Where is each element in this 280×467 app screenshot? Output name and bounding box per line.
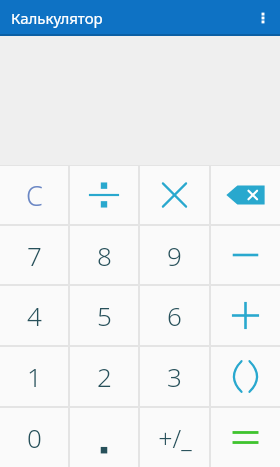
- staticText: C: [26, 177, 43, 214]
- button[interactable]: 9: [140, 226, 209, 284]
- button[interactable]: Multiply: [140, 166, 209, 224]
- staticText: 0: [27, 420, 42, 455]
- staticText: 4: [27, 298, 42, 333]
- button[interactable]: Backspace: [211, 166, 280, 224]
- button[interactable]: +/_: [140, 408, 209, 467]
- staticText: 3: [167, 359, 182, 394]
- button[interactable]: Minus: [211, 226, 280, 284]
- button[interactable]: More options: [246, 0, 280, 36]
- button[interactable]: C: [0, 166, 68, 224]
- button[interactable]: 0: [0, 408, 68, 467]
- button[interactable]: Plus: [211, 286, 280, 345]
- button[interactable]: Parentheses: [211, 347, 280, 406]
- button[interactable]: Equals: [211, 408, 280, 467]
- button[interactable]: 8: [70, 226, 138, 284]
- button[interactable]: 7: [0, 226, 68, 284]
- button[interactable]: 5: [70, 286, 138, 345]
- button[interactable]: Decimal point: [70, 408, 138, 467]
- staticText: 6: [167, 298, 182, 333]
- staticText: 9: [167, 238, 182, 273]
- button[interactable]: 1: [0, 347, 68, 406]
- staticText: 5: [97, 298, 112, 333]
- staticText: 7: [27, 238, 42, 273]
- staticText: 8: [97, 238, 112, 273]
- button[interactable]: 6: [140, 286, 209, 345]
- button[interactable]: 4: [0, 286, 68, 345]
- staticText: 1: [27, 359, 42, 394]
- button[interactable]: 2: [70, 347, 138, 406]
- staticText: Калькулятор: [11, 8, 103, 28]
- staticText: +/_: [158, 421, 192, 455]
- staticText: 2: [97, 359, 112, 394]
- button[interactable]: Divide: [70, 166, 138, 224]
- button[interactable]: 3: [140, 347, 209, 406]
